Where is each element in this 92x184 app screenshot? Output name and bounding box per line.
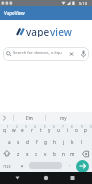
button[interactable]: my xyxy=(46,112,80,124)
staticText: j xyxy=(63,139,65,145)
staticText: . xyxy=(69,161,71,168)
button[interactable]: d xyxy=(23,136,32,148)
button[interactable]: o xyxy=(72,124,81,136)
staticText: my xyxy=(60,115,67,121)
staticText: t xyxy=(40,127,42,133)
staticText: 0 xyxy=(90,125,92,129)
staticText: m xyxy=(70,151,75,157)
staticText: w xyxy=(12,127,16,133)
button[interactable]: n xyxy=(59,148,68,160)
staticText: ?123 xyxy=(3,164,11,169)
staticText: b xyxy=(53,151,56,157)
staticText: 9 xyxy=(81,125,83,129)
button[interactable]: y xyxy=(45,124,54,136)
staticText: l xyxy=(81,139,83,145)
button[interactable]: h xyxy=(50,136,59,148)
staticText: 4 xyxy=(34,125,36,129)
staticText: a xyxy=(8,139,11,145)
staticText: 8 xyxy=(71,125,73,129)
button[interactable]: m xyxy=(68,148,77,160)
staticText: n xyxy=(62,151,65,157)
button[interactable]: a xyxy=(5,136,14,148)
staticText: g xyxy=(44,139,47,145)
staticText: view xyxy=(50,25,72,37)
button[interactable]: c xyxy=(32,148,41,160)
staticText: 5 xyxy=(44,125,46,129)
button[interactable]: q xyxy=(0,124,9,136)
staticText: d xyxy=(26,139,29,145)
staticText: 1 xyxy=(7,125,9,129)
staticText: z xyxy=(17,151,20,157)
button[interactable]: j xyxy=(59,136,68,148)
button[interactable] xyxy=(76,160,89,173)
staticText: u xyxy=(57,127,60,133)
button[interactable]: z xyxy=(14,148,23,160)
button[interactable]: i xyxy=(63,124,72,136)
button[interactable] xyxy=(29,162,62,169)
staticText: 5:10 xyxy=(79,1,87,6)
button[interactable]: p xyxy=(81,124,90,136)
staticText: v xyxy=(44,151,47,157)
button[interactable]: f xyxy=(32,136,41,148)
button[interactable]: t xyxy=(36,124,45,136)
button[interactable] xyxy=(3,47,89,61)
staticText: p xyxy=(84,127,87,133)
button[interactable]: v xyxy=(41,148,50,160)
staticText: vape xyxy=(26,25,50,37)
button[interactable]: ?123 xyxy=(0,160,14,172)
staticText: e xyxy=(21,127,24,133)
button[interactable]: l xyxy=(77,136,86,148)
staticText: 6 xyxy=(53,125,55,129)
staticText: I'm xyxy=(26,115,33,121)
staticText: k xyxy=(71,139,74,145)
staticText: 7 xyxy=(62,125,64,129)
staticText: Search for devices, e-liqu xyxy=(13,50,62,56)
button[interactable] xyxy=(0,6,92,20)
button[interactable]: g xyxy=(41,136,50,148)
button[interactable]: w xyxy=(9,124,18,136)
button[interactable]: r xyxy=(27,124,36,136)
staticText: s xyxy=(17,139,20,145)
staticText: x xyxy=(26,151,29,157)
button[interactable]: e xyxy=(18,124,27,136)
button[interactable]: I'm xyxy=(12,112,46,124)
staticText: q xyxy=(3,127,6,133)
staticText: 2 xyxy=(16,125,18,129)
staticText: r xyxy=(31,127,33,133)
button[interactable]: k xyxy=(68,136,77,148)
staticText: h xyxy=(53,139,56,145)
staticText: o xyxy=(75,127,78,133)
staticText: VapeView xyxy=(4,10,25,16)
staticText: 3 xyxy=(25,125,27,129)
button[interactable]: x xyxy=(23,148,32,160)
staticText: y xyxy=(48,127,51,133)
staticText: f xyxy=(36,139,38,145)
staticText: i xyxy=(67,127,69,133)
button[interactable]: u xyxy=(54,124,63,136)
button[interactable]: b xyxy=(50,148,59,160)
button[interactable]: s xyxy=(14,136,23,148)
staticText: c xyxy=(35,151,38,157)
